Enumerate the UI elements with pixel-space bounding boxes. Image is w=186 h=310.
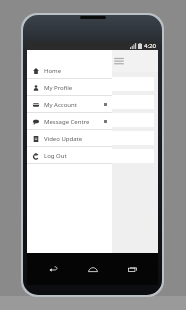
- button[interactable]: Recent apps: [119, 259, 145, 279]
- staticText: Product Investment: [37, 98, 98, 107]
- button[interactable]: Vault Summary: [31, 149, 154, 163]
- button[interactable]: Product Investment: [31, 95, 154, 109]
- staticText: Vault Summary: [37, 152, 84, 161]
- button[interactable]: My Profile: [27, 79, 112, 96]
- button[interactable]: Active Products: [31, 77, 154, 91]
- staticText: My Profile: [44, 84, 73, 92]
- button[interactable]: My Referral: [31, 131, 154, 145]
- staticText: Log Out: [44, 152, 67, 160]
- button[interactable]: Open navigation drawer: [113, 55, 125, 67]
- button[interactable]: Message Centre: [27, 113, 112, 130]
- button[interactable]: Home: [27, 62, 112, 79]
- staticText: 4:20: [144, 42, 156, 50]
- staticText: Message Centre: [44, 118, 90, 126]
- staticText: Home: [44, 67, 62, 75]
- button[interactable]: Home: [80, 259, 106, 279]
- staticText: Active Products: [37, 80, 84, 89]
- button[interactable]: Video Update: [27, 130, 112, 147]
- staticText: My Referral: [37, 134, 73, 143]
- button[interactable]: Back: [40, 259, 66, 279]
- button[interactable]: Transaction History: [31, 113, 154, 127]
- staticText: My Account: [44, 101, 77, 109]
- button[interactable]: Log Out: [27, 147, 112, 164]
- button[interactable]: My Account: [27, 96, 112, 113]
- staticText: Video Update: [44, 135, 83, 143]
- staticText: Transaction History: [37, 116, 96, 125]
